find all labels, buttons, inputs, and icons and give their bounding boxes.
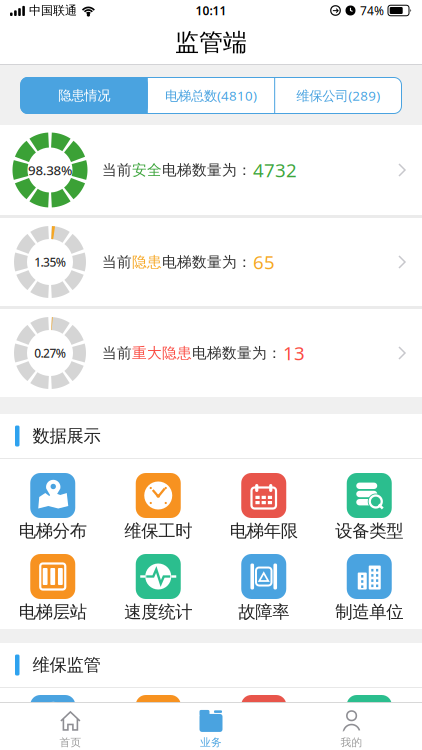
staticText: 数据展示 — [32, 425, 100, 447]
staticText: 电梯分布 — [19, 520, 87, 542]
staticText: 维保工时 — [124, 520, 192, 542]
staticText: 维保公司(289) — [296, 87, 380, 104]
staticText: 4732 — [253, 158, 297, 182]
staticText: 电梯数量为： — [162, 161, 252, 179]
staticText: 维保统计 — [335, 742, 403, 750]
staticText: 我的 — [341, 736, 363, 749]
staticText: 安全 — [132, 161, 162, 179]
button[interactable]: 维保公司(289) — [275, 78, 401, 113]
staticText: 1.35% — [34, 254, 66, 270]
button[interactable]: 0.27% — [0, 309, 422, 397]
staticText: 当前 — [102, 253, 132, 271]
staticText: 电梯总数(4810) — [165, 87, 257, 104]
staticText: 0.27% — [34, 345, 66, 361]
staticText: 故障率 — [238, 601, 289, 623]
staticText: 电梯数量为： — [162, 253, 252, 271]
staticText: 制造单位 — [335, 601, 403, 623]
button[interactable]: 电梯总数(4810) — [148, 78, 274, 113]
staticText: 速度统计 — [124, 601, 192, 623]
staticText: 设备类型 — [335, 520, 403, 542]
button[interactable]: 电梯年限 — [211, 473, 316, 539]
staticText: 65 — [253, 250, 275, 274]
staticText: 中国联通 — [29, 3, 77, 18]
staticText: 10:11 — [195, 2, 226, 18]
staticText: 隐患情况 — [58, 87, 110, 104]
button[interactable]: 速度统计 — [105, 554, 211, 620]
staticText: 维保监管 — [32, 654, 100, 676]
staticText: 98.38% — [28, 161, 72, 179]
button[interactable]: 制造单位 — [316, 554, 422, 620]
button[interactable]: 维保统计 — [316, 695, 422, 750]
button[interactable]: 维保信息 — [105, 695, 211, 750]
staticText: 当前 — [102, 344, 132, 362]
staticText: 首页 — [59, 736, 81, 749]
staticText: 当前 — [102, 161, 132, 179]
button[interactable]: 98.38% — [0, 125, 422, 215]
button[interactable]: 维保工时 — [105, 473, 211, 539]
button[interactable]: 1.35% — [0, 218, 422, 306]
button[interactable]: 首页 — [0, 703, 141, 750]
staticText: 电梯层站 — [19, 601, 87, 623]
staticText: 74% — [360, 2, 384, 18]
button[interactable]: 电梯分布 — [0, 473, 105, 539]
staticText: 监管端 — [175, 28, 247, 57]
button[interactable]: 业务 — [141, 703, 281, 750]
button[interactable]: 维保超期 — [211, 695, 316, 750]
staticText: 重大隐患 — [132, 344, 192, 362]
staticText: 维保到期 — [19, 742, 87, 750]
button[interactable]: 设备类型 — [316, 473, 422, 539]
staticText: 电梯年限 — [230, 520, 298, 542]
button[interactable]: 电梯层站 — [0, 554, 105, 620]
button[interactable]: 隐患情况 — [20, 77, 148, 114]
button[interactable]: 我的 — [281, 703, 422, 750]
button[interactable]: 故障率 — [211, 554, 316, 620]
staticText: 13 — [283, 341, 305, 365]
staticText: 隐患 — [132, 253, 162, 271]
staticText: 电梯数量为： — [192, 344, 282, 362]
staticText: 业务 — [200, 736, 222, 749]
button[interactable]: 维保到期 — [0, 695, 105, 750]
